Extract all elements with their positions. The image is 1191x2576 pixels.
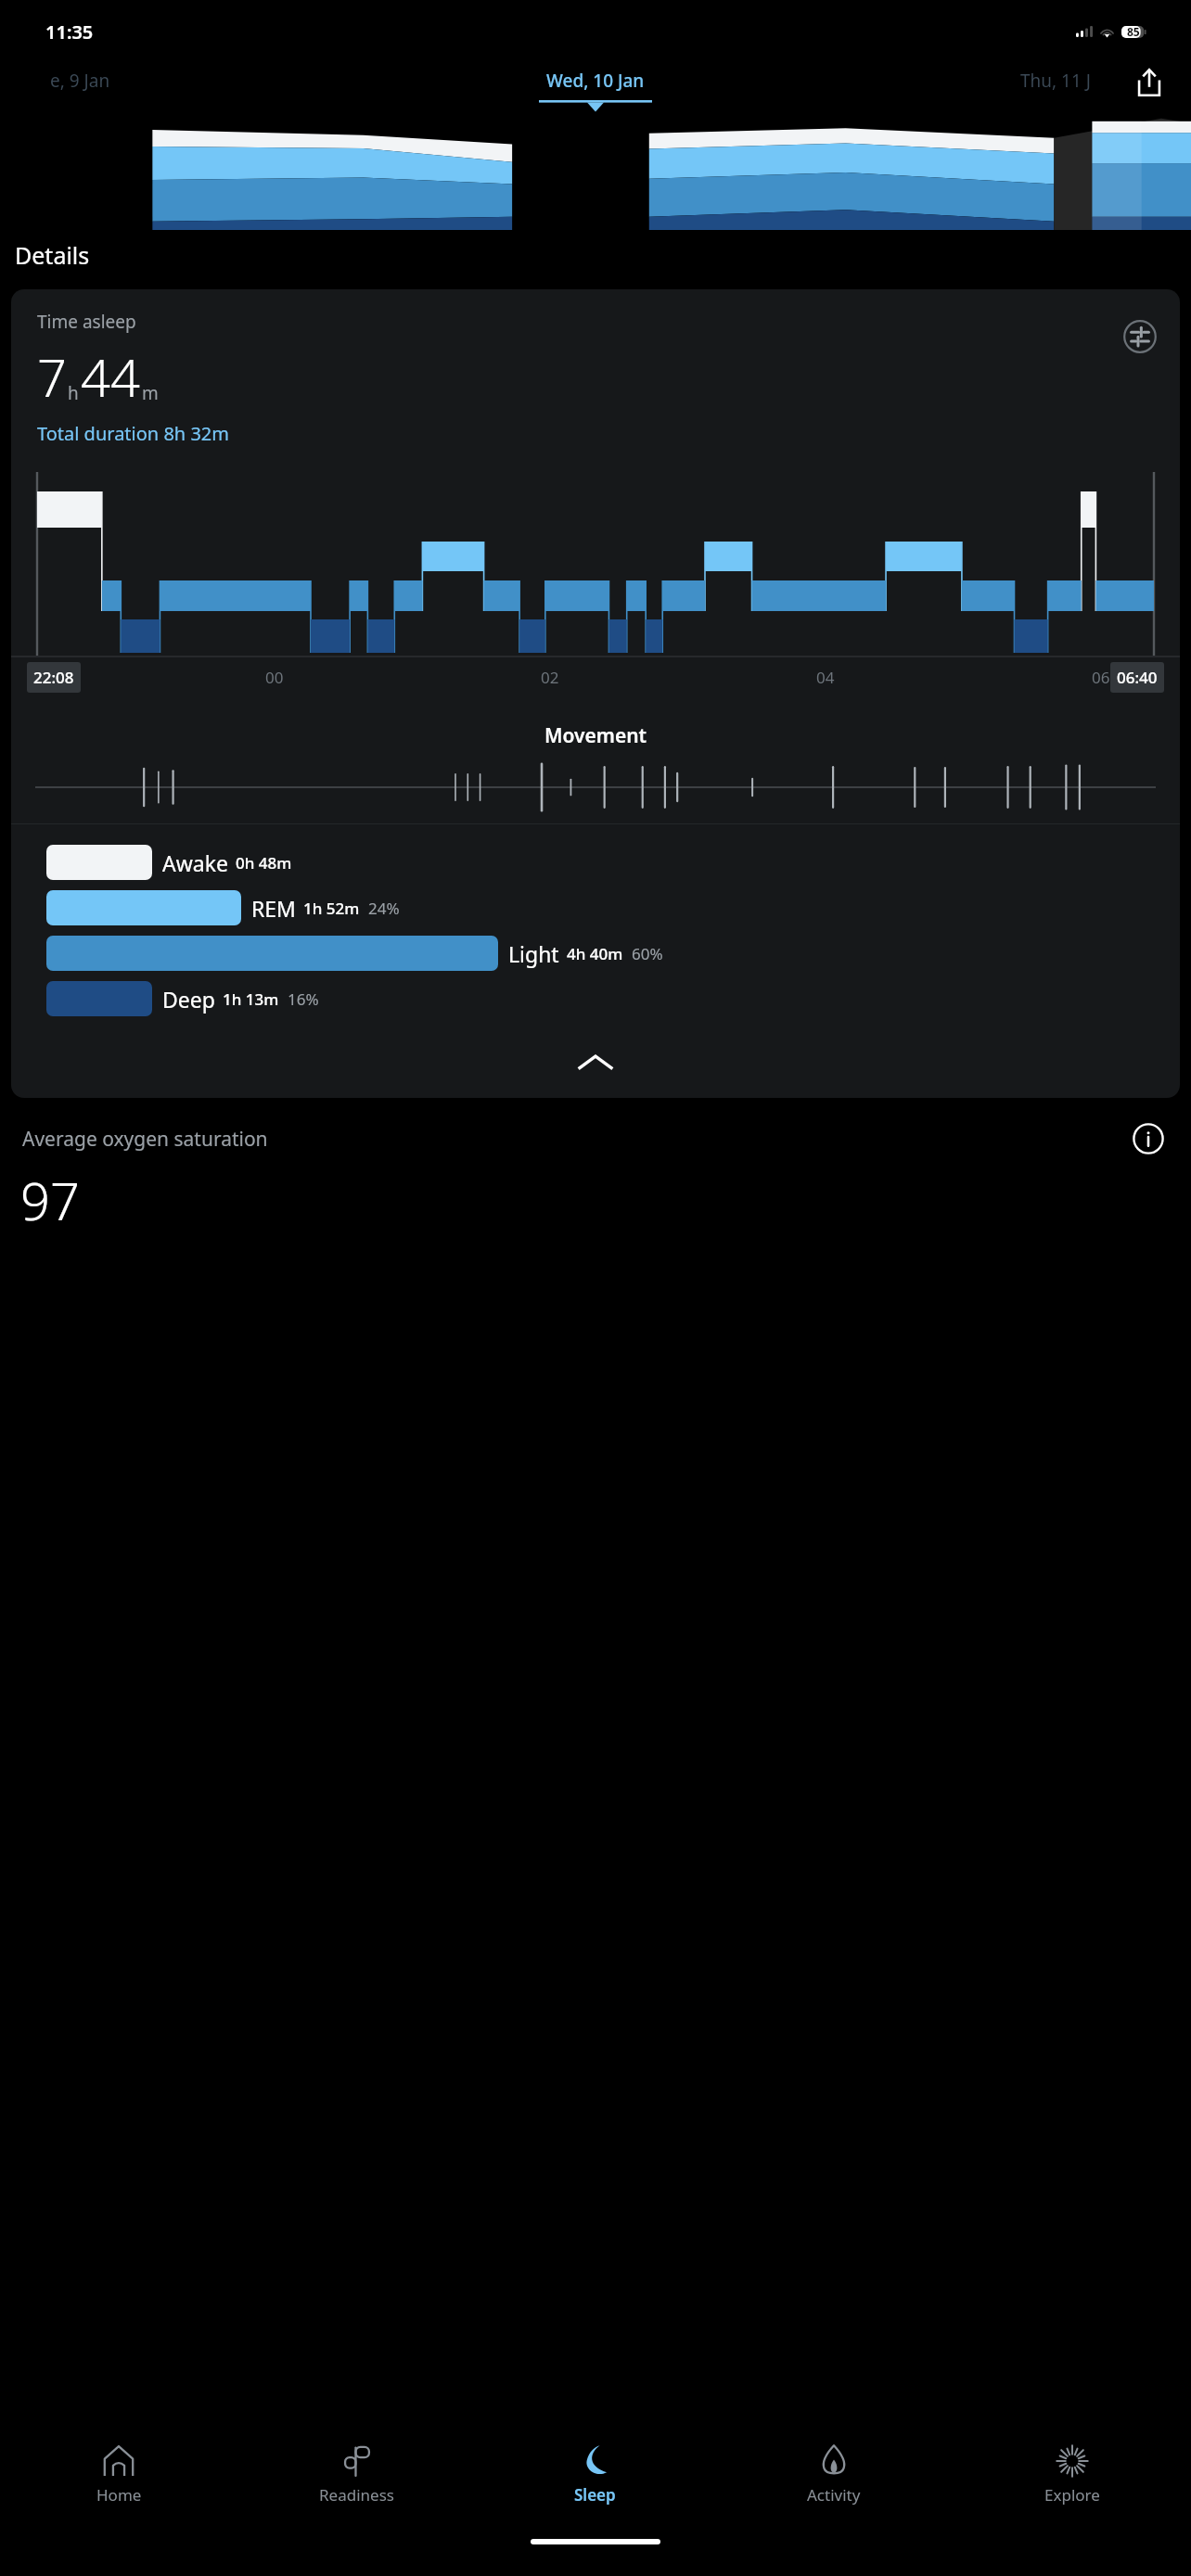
button[interactable]: Activity — [714, 2424, 953, 2524]
button[interactable]: e, 9 Jan — [50, 69, 110, 93]
staticText: 44 — [81, 341, 140, 412]
staticText: 00 — [265, 667, 284, 688]
staticText: Awake — [162, 848, 228, 877]
staticText: 16% — [288, 988, 319, 1010]
staticText: 06 — [1092, 667, 1110, 688]
staticText: 1h 13m — [223, 988, 279, 1010]
staticText: 0h 48m — [236, 852, 292, 874]
staticText: 22:08 — [33, 667, 74, 688]
button[interactable]: Collapse — [11, 1037, 1180, 1089]
button[interactable]: Thu, 11 J — [1020, 69, 1091, 93]
staticText: Home — [96, 2484, 142, 2506]
button[interactable]: Readiness — [237, 2424, 476, 2524]
staticText: 02 — [541, 667, 559, 688]
staticText: Light — [508, 939, 559, 968]
staticText: 97 — [20, 1165, 80, 1235]
button[interactable]: Info — [1128, 1118, 1169, 1159]
staticText: m — [142, 381, 159, 405]
button[interactable]: Home — [0, 2424, 237, 2524]
staticText: 11:35 — [45, 19, 94, 45]
staticText: Sleep — [574, 2484, 616, 2506]
staticText: Average oxygen saturation — [22, 1126, 268, 1153]
staticText: Readiness — [319, 2484, 394, 2506]
staticText: 7 — [37, 341, 67, 412]
staticText: Deep — [162, 985, 215, 1014]
button[interactable]: Share — [1128, 61, 1171, 104]
staticText: 4h 40m — [567, 943, 623, 964]
staticText: Details — [15, 239, 90, 271]
staticText: 24% — [368, 898, 400, 919]
staticText: 06:40 — [1117, 667, 1158, 688]
staticText: Movement — [11, 722, 1180, 749]
staticText: Wed, 10 Jan — [546, 69, 645, 93]
button[interactable]: Wed, 10 Jan — [539, 57, 652, 112]
staticText: 60% — [632, 943, 663, 964]
staticText: Explore — [1044, 2484, 1100, 2506]
button[interactable]: Explore — [953, 2424, 1191, 2524]
staticText: h — [68, 381, 79, 405]
staticText: 1h 52m — [303, 898, 360, 919]
staticText: Total duration 8h 32m — [37, 421, 229, 446]
button[interactable]: Adjust sleep — [1121, 317, 1159, 356]
button[interactable]: Sleep — [476, 2424, 714, 2524]
staticText: 04 — [816, 667, 835, 688]
staticText: REM — [251, 894, 296, 923]
staticText: Time asleep — [37, 310, 136, 334]
staticText: 85 — [1127, 24, 1140, 39]
staticText: Activity — [807, 2484, 861, 2506]
